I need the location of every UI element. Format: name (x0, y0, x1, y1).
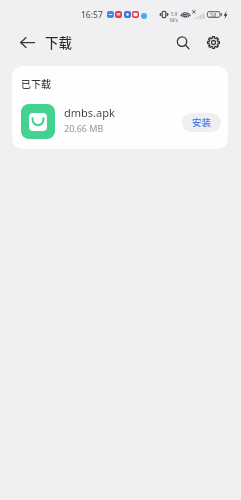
button[interactable]: dmbs.apk (12, 96, 228, 144)
staticText: 安装 (192, 115, 212, 129)
button[interactable]: Back (9, 27, 45, 58)
button[interactable]: Search (168, 27, 198, 58)
staticText: 20.66 MB (64, 122, 104, 134)
staticText: M/s (170, 17, 178, 23)
staticText: 16:57 (81, 9, 103, 18)
staticText: 5.9 (171, 11, 178, 17)
staticText: 已下载 (21, 76, 51, 90)
button[interactable]: 安装 (182, 113, 221, 132)
staticText: dmbs.apk (64, 105, 115, 120)
staticText: 下载 (45, 32, 72, 52)
button[interactable]: Settings (198, 27, 228, 58)
staticText: 58 (210, 11, 217, 18)
